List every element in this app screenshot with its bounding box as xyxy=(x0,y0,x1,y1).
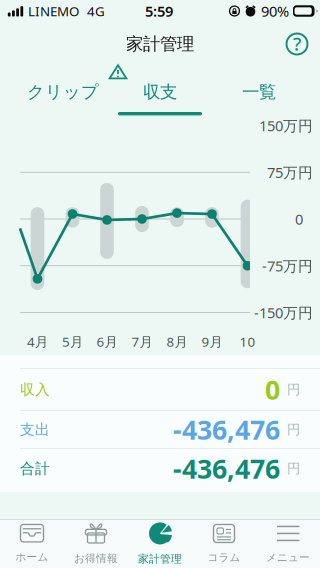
staticText: 5月 xyxy=(62,333,83,350)
staticText: 4月 xyxy=(27,333,48,350)
button[interactable]: コラム xyxy=(192,519,256,568)
staticText: 円 xyxy=(287,381,300,398)
button[interactable]: 家計管理 xyxy=(128,519,192,568)
staticText: 7月 xyxy=(131,333,152,350)
button[interactable]: 一覧 xyxy=(209,72,309,112)
button[interactable]: ホーム xyxy=(0,519,64,568)
staticText: メニュー xyxy=(266,551,310,564)
staticText: 75万円 xyxy=(267,162,313,182)
staticText: 円 xyxy=(287,421,300,438)
staticText: -75万円 xyxy=(262,256,313,275)
staticText: 10 xyxy=(239,333,255,350)
staticText: ホーム xyxy=(15,550,48,563)
staticText: 収入 xyxy=(20,380,50,398)
staticText: 90% xyxy=(261,1,289,21)
button[interactable]: お得情報 xyxy=(64,519,128,568)
staticText: クリップ xyxy=(27,81,99,103)
button[interactable]: クリップ xyxy=(13,72,113,112)
staticText: 150万円 xyxy=(259,116,313,135)
staticText: コラム xyxy=(207,551,240,564)
staticText: -436,476 xyxy=(173,412,280,447)
staticText: 合計 xyxy=(20,459,50,477)
button[interactable]: メニュー xyxy=(256,519,320,568)
staticText: 9月 xyxy=(201,333,222,350)
staticText: 0 xyxy=(265,372,280,407)
staticText: 4G xyxy=(87,2,105,20)
staticText: 家計管理 xyxy=(126,33,194,55)
staticText: 支出 xyxy=(20,420,50,438)
button[interactable]: ヘルプ xyxy=(279,26,315,62)
staticText: 円 xyxy=(287,460,300,477)
staticText: -436,476 xyxy=(173,451,280,486)
button[interactable]: 収支 xyxy=(114,72,206,112)
staticText: お得情報 xyxy=(74,552,118,565)
staticText: 5:59 xyxy=(145,1,173,21)
staticText: 家計管理 xyxy=(138,552,182,565)
staticText: 収支 xyxy=(143,81,177,103)
staticText: 0 xyxy=(295,209,303,229)
staticText: -150万円 xyxy=(254,303,313,322)
staticText: 8月 xyxy=(166,333,187,350)
staticText: LINEMO xyxy=(28,2,79,20)
staticText: 一覧 xyxy=(242,81,276,103)
staticText: ? xyxy=(293,31,301,56)
staticText: 6月 xyxy=(96,333,117,350)
